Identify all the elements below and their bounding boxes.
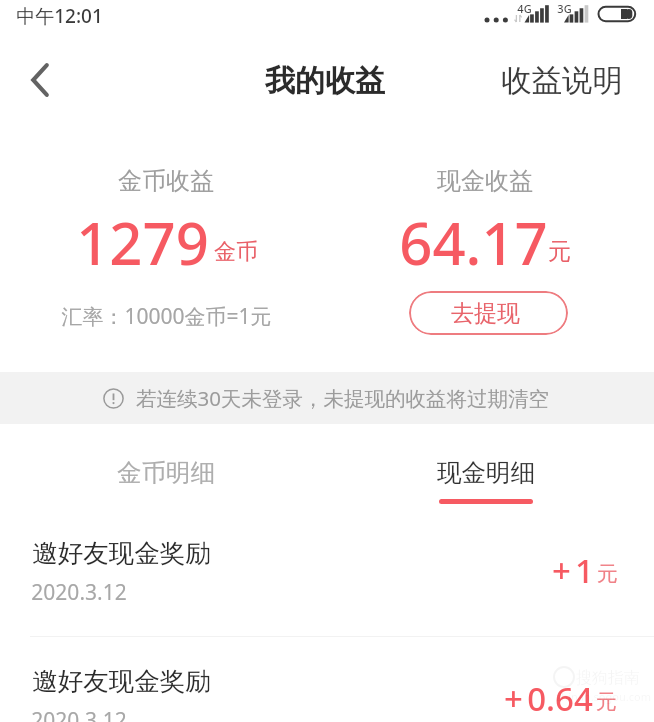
staticText: 元 xyxy=(548,237,571,266)
staticText: 元 xyxy=(596,689,617,715)
staticText: 0.64 xyxy=(527,676,593,721)
button[interactable]: Back xyxy=(4,54,76,106)
button[interactable]: 邀好友现金奖励 xyxy=(0,512,654,639)
staticText: + xyxy=(552,548,571,593)
staticText: 中午12:01 xyxy=(16,3,103,29)
staticText: 3G xyxy=(557,1,572,16)
staticText: 金币 xyxy=(214,238,258,266)
staticText: 1 xyxy=(575,548,594,593)
staticText: 2020.3.12 xyxy=(31,578,127,607)
staticText: + xyxy=(504,676,523,721)
staticText: 元 xyxy=(597,561,618,587)
staticText: 2020.3.12 xyxy=(31,706,127,722)
staticText: 现金明细 xyxy=(437,457,535,488)
button[interactable]: 去提现 xyxy=(409,291,568,335)
staticText: 1279 xyxy=(76,203,209,282)
staticText: zhinan.sogou.com xyxy=(556,689,651,704)
staticText: 金币收益 xyxy=(118,166,214,196)
button[interactable]: 收益说明 xyxy=(469,48,654,114)
staticText: 收益说明 xyxy=(501,62,623,100)
button[interactable]: 金币明细 xyxy=(0,424,327,506)
button[interactable]: 邀好友现金奖励 xyxy=(0,640,654,722)
staticText: 搜狗指南 xyxy=(576,668,640,688)
staticText: 4G xyxy=(517,1,532,16)
staticText: 邀好友现金奖励 xyxy=(32,537,211,569)
staticText: 汇率：10000金币=1元 xyxy=(61,302,272,331)
staticText: 邀好友现金奖励 xyxy=(32,665,211,697)
staticText: 我的收益 xyxy=(265,62,385,100)
staticText: 现金收益 xyxy=(437,166,533,196)
staticText: 金币明细 xyxy=(117,457,215,488)
staticText: 64.17 xyxy=(399,203,548,282)
staticText: 若连续30天未登录，未提现的收益将过期清空 xyxy=(136,384,549,412)
button[interactable]: 现金明细 xyxy=(327,424,654,506)
staticText: 去提现 xyxy=(451,299,520,328)
